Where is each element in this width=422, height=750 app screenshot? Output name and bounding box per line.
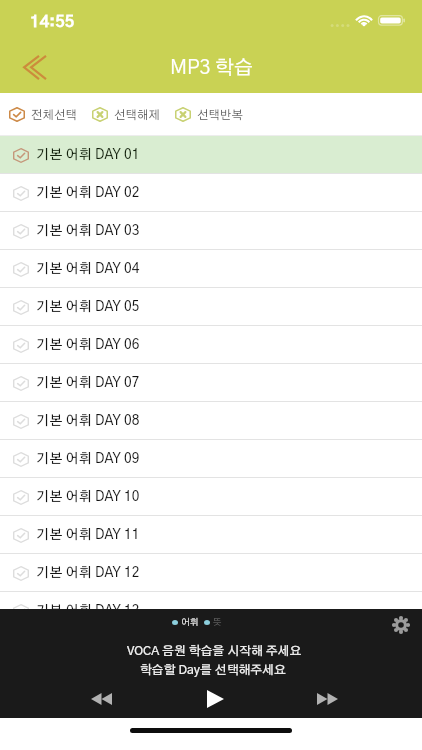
staticText: 선택반복 [197,109,244,121]
button[interactable]: Settings [386,610,416,640]
staticText: 전체선택 [31,109,78,121]
staticText: 기본 어휘 DAY 02 [36,186,140,200]
staticText: 학습할 Day를 선택해주세요 [140,664,286,676]
staticText: 뜻 [213,618,222,627]
staticText: 어휘 [181,618,199,627]
staticText: 14:55 [30,14,75,31]
staticText: 기본 어휘 DAY 13 [36,604,140,618]
button[interactable]: 기본 어휘 DAY 06 [0,326,422,364]
staticText: 선택해제 [114,109,161,121]
button[interactable]: 기본 어휘 DAY 11 [0,516,422,554]
button[interactable]: 기본 어휘 DAY 10 [0,478,422,516]
staticText: 기본 어휘 DAY 10 [36,490,140,504]
button[interactable]: Back [13,48,57,84]
button[interactable]: 기본 어휘 DAY 01 [0,136,422,174]
button[interactable]: 기본 어휘 DAY 05 [0,288,422,326]
button[interactable]: 기본 어휘 DAY 12 [0,554,422,592]
button[interactable]: Play [189,673,241,725]
staticText: VOCA 음원 학습을 시작해 주세요 [127,645,302,657]
button[interactable]: 기본 어휘 DAY 13 [0,592,422,630]
button[interactable]: 어휘 [170,615,201,630]
staticText: 기본 어휘 DAY 04 [36,262,140,276]
button[interactable]: 선택해제 [91,101,162,128]
button[interactable]: 기본 어휘 DAY 03 [0,212,422,250]
button[interactable]: 기본 어휘 DAY 02 [0,174,422,212]
staticText: MP3 학습 [170,58,253,78]
button[interactable]: 선택반복 [174,101,245,128]
staticText: 기본 어휘 DAY 06 [36,338,140,352]
staticText: 기본 어휘 DAY 01 [36,148,140,162]
staticText: 기본 어휘 DAY 12 [36,566,140,580]
button[interactable]: Fast forward [301,673,353,725]
staticText: 기본 어휘 DAY 09 [36,452,140,466]
button[interactable]: 기본 어휘 DAY 08 [0,402,422,440]
button[interactable]: 기본 어휘 DAY 07 [0,364,422,402]
button[interactable]: 기본 어휘 DAY 04 [0,250,422,288]
button[interactable]: 뜻 [202,615,224,630]
staticText: 기본 어휘 DAY 11 [36,528,140,542]
staticText: 기본 어휘 DAY 07 [36,376,140,390]
staticText: 기본 어휘 DAY 08 [36,414,140,428]
button[interactable]: Rewind [75,673,127,725]
button[interactable]: 기본 어휘 DAY 09 [0,440,422,478]
staticText: 기본 어휘 DAY 05 [36,300,140,314]
button[interactable]: 전체선택 [8,101,79,128]
staticText: 기본 어휘 DAY 03 [36,224,140,238]
